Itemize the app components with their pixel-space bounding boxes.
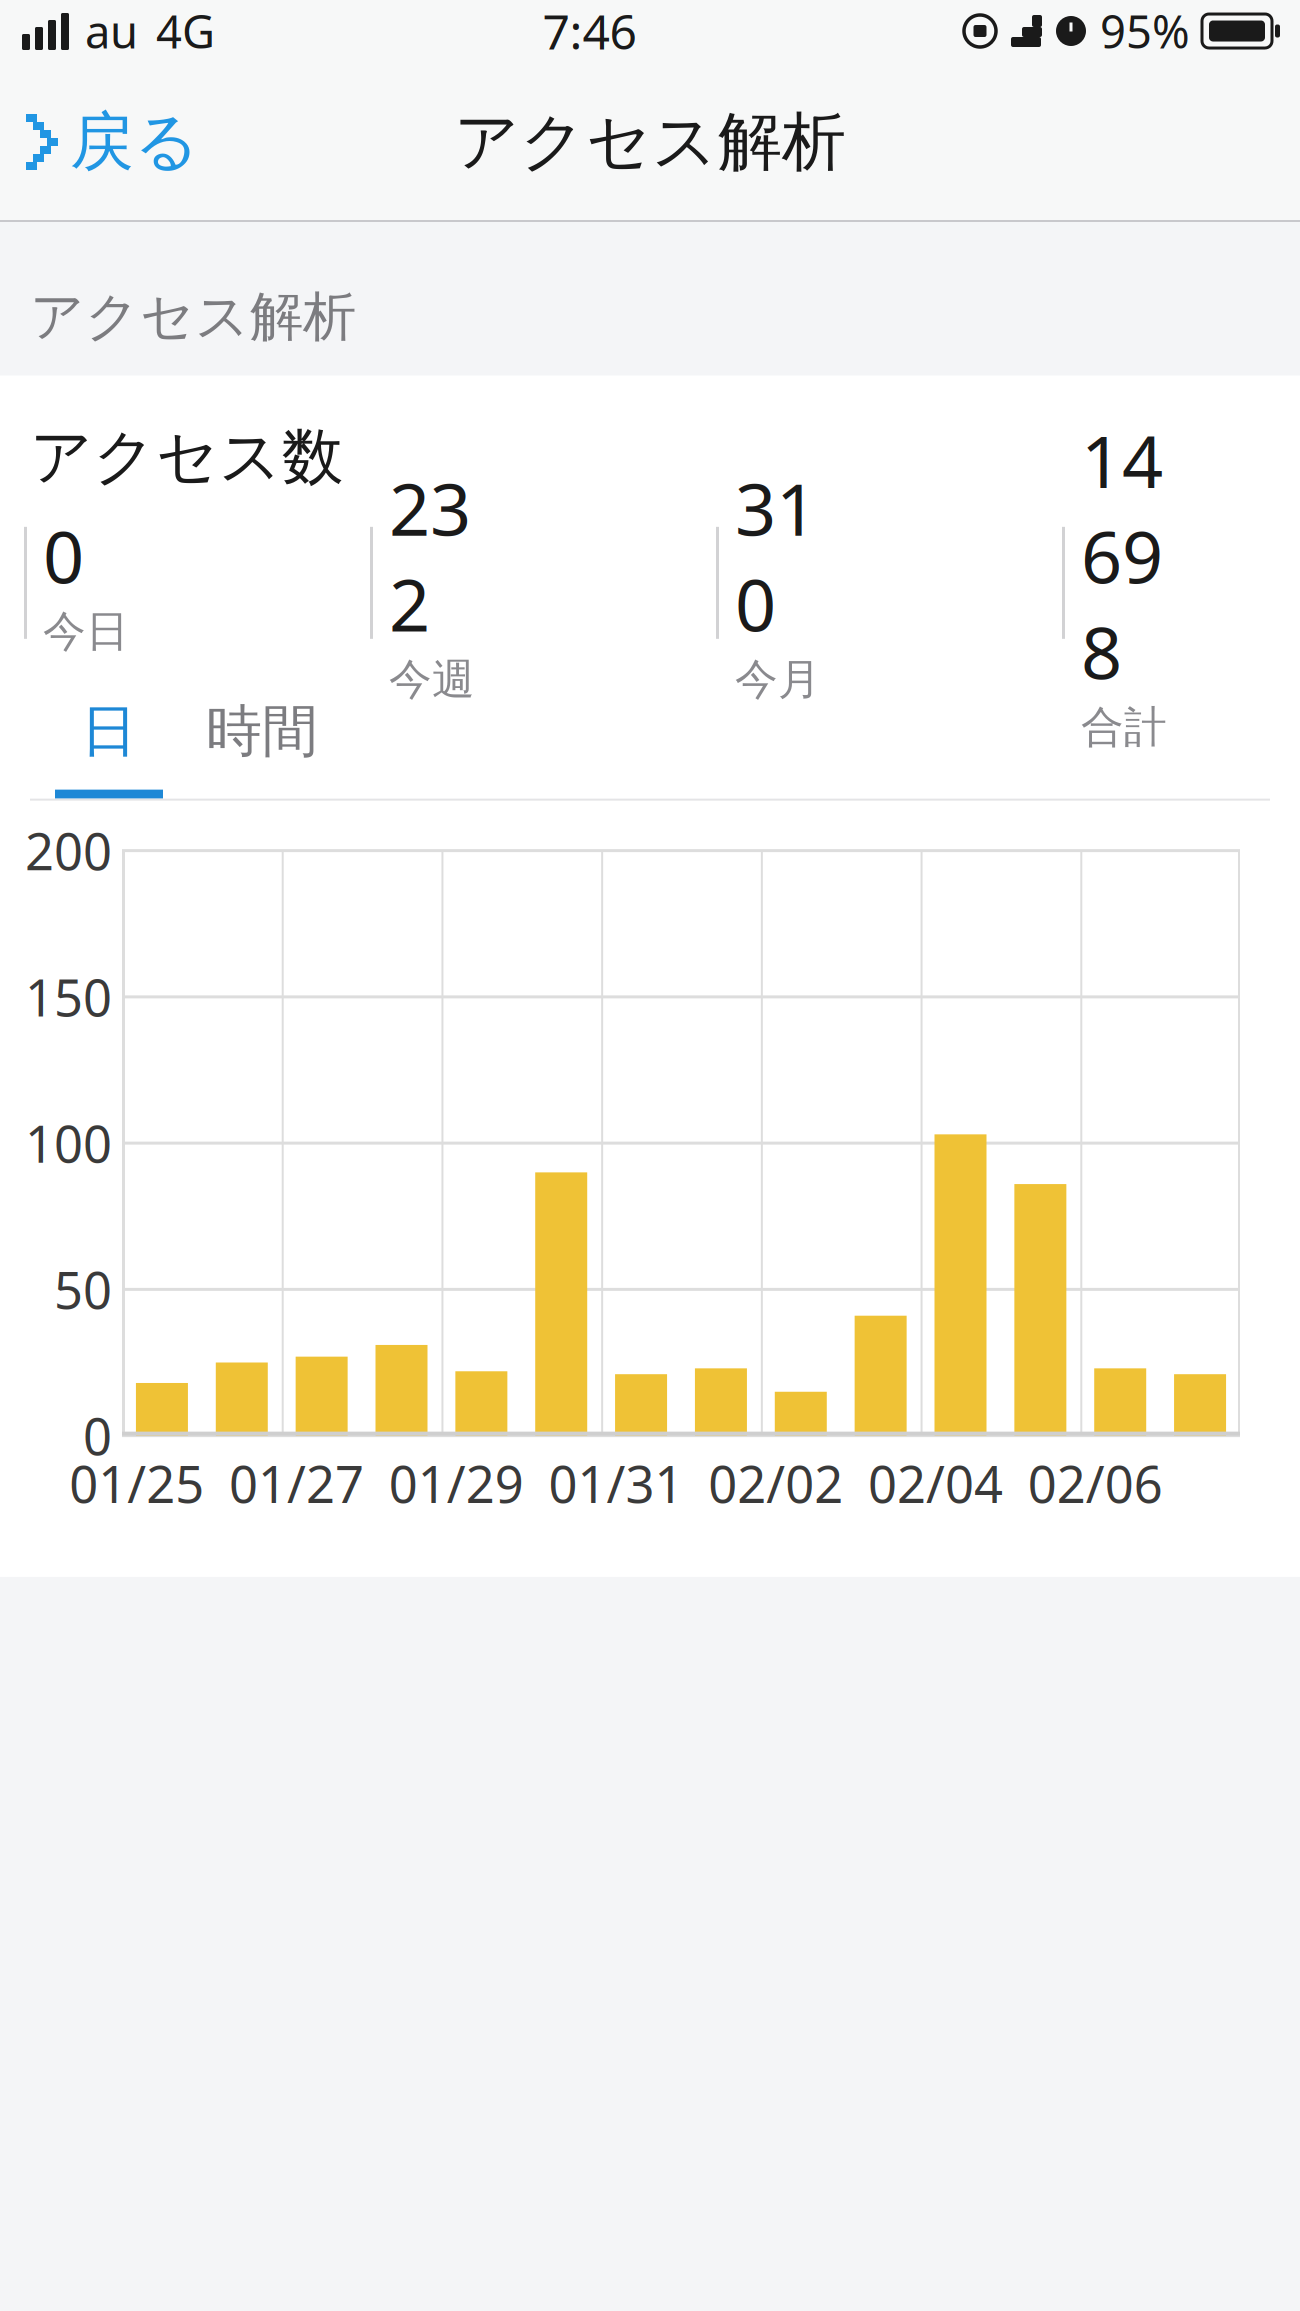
staticText: 14698 xyxy=(1081,412,1163,699)
staticText: 01/25 xyxy=(69,1450,204,1517)
staticText: 0 xyxy=(83,1402,112,1469)
staticText: 0 xyxy=(43,508,84,603)
staticText: 時間 xyxy=(206,697,318,766)
staticText: 50 xyxy=(54,1256,112,1323)
staticText: アクセス数 xyxy=(30,419,343,495)
staticText: 4G xyxy=(156,1,215,61)
staticText: 02/06 xyxy=(1028,1450,1163,1517)
staticText: 合計 xyxy=(1081,701,1167,753)
staticText: 310 xyxy=(735,460,817,651)
staticText: 今日 xyxy=(43,605,129,658)
staticText: 戻る xyxy=(70,103,200,181)
button[interactable]: 時間 xyxy=(197,697,327,799)
staticText: 02/02 xyxy=(708,1450,843,1517)
staticText: 01/31 xyxy=(548,1450,683,1517)
staticText: アクセス解析 xyxy=(454,103,846,181)
staticText: 100 xyxy=(25,1109,112,1177)
button[interactable]: 戻る xyxy=(0,81,216,203)
staticText: 今週 xyxy=(389,653,475,706)
staticText: 7:46 xyxy=(542,0,636,63)
staticText: アクセス解析 xyxy=(30,284,356,349)
staticText: 今月 xyxy=(735,653,821,706)
button[interactable]: 日 xyxy=(55,697,163,799)
staticText: 日 xyxy=(81,697,137,766)
staticText: 232 xyxy=(389,460,471,651)
staticText: 150 xyxy=(25,963,112,1030)
staticText: 200 xyxy=(25,817,112,884)
staticText: 01/29 xyxy=(389,1450,524,1517)
staticText: 01/27 xyxy=(229,1450,364,1517)
staticText: 02/04 xyxy=(868,1450,1003,1517)
staticText: au xyxy=(85,1,138,61)
staticText: 95% xyxy=(1100,1,1190,61)
